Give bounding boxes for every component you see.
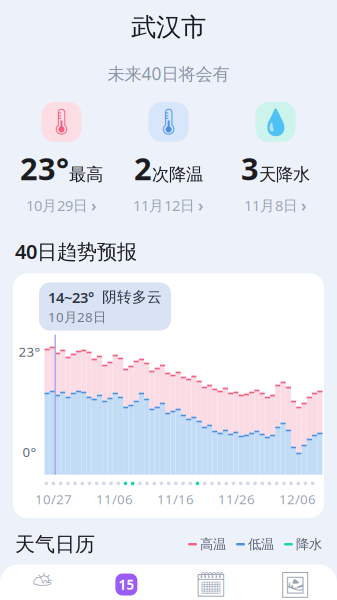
staticText: 🗓	[195, 571, 227, 600]
button[interactable]: 🗓	[168, 574, 253, 600]
staticText: 低温	[248, 536, 274, 552]
staticText: 💧	[259, 107, 291, 136]
button[interactable]: 🌡	[8, 102, 115, 216]
staticText: 天降水	[259, 164, 310, 185]
staticText: 40日趋势预报	[15, 238, 137, 264]
staticText: 11月12日	[133, 195, 195, 215]
staticText: 未来40日将会有	[107, 62, 229, 85]
staticText: 🌡	[45, 107, 77, 136]
button[interactable]: 💧	[222, 102, 329, 216]
staticText: 🌡	[152, 107, 184, 136]
staticText: 11月8日	[244, 195, 298, 215]
staticText: 🖼	[279, 571, 311, 600]
button[interactable]: 🖼	[253, 574, 337, 600]
staticText: 12/06	[279, 490, 316, 508]
staticText: 11/06	[96, 490, 133, 508]
staticText: 11/26	[218, 490, 255, 508]
staticText: 高温	[200, 536, 226, 552]
staticText: ›	[301, 195, 307, 216]
staticText: 武汉市	[131, 12, 206, 43]
button[interactable]: ⛅︎	[0, 574, 84, 600]
staticText: 降水	[296, 536, 322, 552]
staticText: 阴转多云	[102, 288, 162, 306]
staticText: ›	[91, 195, 97, 216]
staticText: 23°	[18, 343, 40, 360]
button[interactable]: 🌡	[115, 102, 222, 216]
staticText: 天气日历	[15, 532, 95, 556]
staticText: 10/27	[35, 490, 72, 508]
button[interactable]: 15	[84, 573, 168, 600]
staticText: 最高	[69, 164, 103, 185]
staticText: 0°	[22, 443, 36, 461]
staticText: 2	[134, 148, 152, 189]
staticText: 3	[241, 148, 259, 189]
staticText: 14~23°	[48, 287, 94, 307]
staticText: 11/16	[157, 490, 194, 508]
staticText: ›	[198, 195, 204, 216]
staticText: 10月29日	[26, 195, 88, 215]
staticText: 23°	[20, 148, 69, 189]
staticText: 10月28日	[48, 308, 106, 326]
staticText: ⛅︎	[32, 573, 52, 597]
staticText: 次降温	[152, 164, 203, 185]
staticText: 15	[118, 576, 134, 593]
